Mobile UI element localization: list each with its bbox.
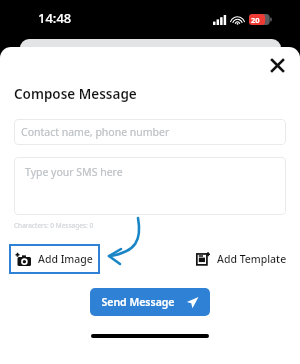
button[interactable]: Contact name, phone number [14,119,286,145]
button[interactable]: Send Message [90,288,210,316]
staticText: Add Image [38,252,93,266]
button[interactable]: Add Template [196,252,287,266]
staticText: Contact name, phone number [21,125,170,139]
staticText: 14:48 [38,9,72,27]
staticText: Characters: 0 Messages: 0 [14,221,94,230]
staticText: Compose Message [14,85,137,103]
staticText: Add Template [217,252,287,266]
button[interactable]: Add Image [16,244,93,274]
staticText: Send Message [101,295,175,309]
staticText: Type your SMS here [25,165,123,179]
button[interactable]: Type your SMS here [14,157,286,215]
button[interactable]: Close [264,52,290,78]
staticText: 20 [251,15,260,25]
